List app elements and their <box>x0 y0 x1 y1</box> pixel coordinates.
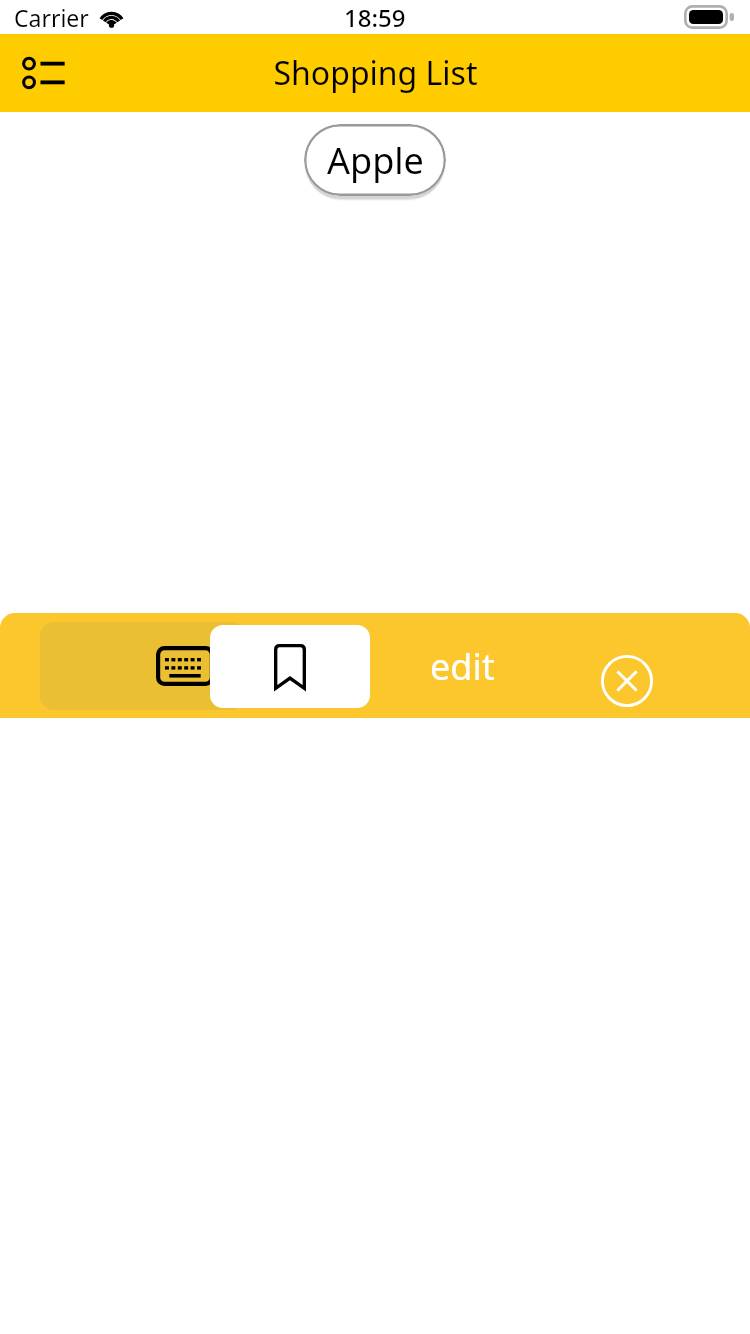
button[interactable]: Close <box>592 646 662 716</box>
button[interactable]: edit <box>405 631 520 701</box>
staticText: 18:59 <box>344 1 406 34</box>
button[interactable]: Apple <box>304 124 446 196</box>
staticText: Apple <box>327 136 424 185</box>
staticText: Carrier <box>14 2 89 33</box>
staticText: edit <box>430 642 495 691</box>
button[interactable]: Bookmark <box>210 625 370 708</box>
staticText: Shopping List <box>273 51 478 95</box>
button[interactable]: Lists <box>14 43 74 103</box>
button[interactable]: Keyboard <box>40 622 245 710</box>
